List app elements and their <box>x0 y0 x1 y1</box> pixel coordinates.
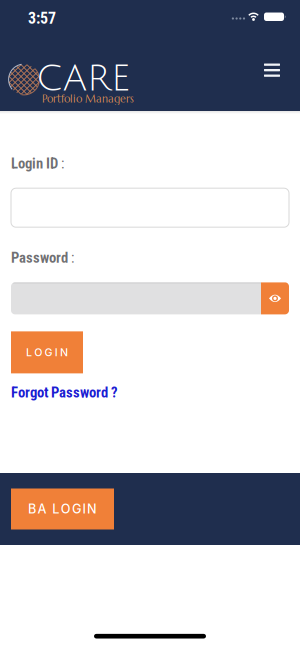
staticText: Login ID <box>11 155 58 172</box>
button[interactable]: L <box>11 331 83 373</box>
staticText: Portfolio Managers <box>42 92 134 105</box>
staticText: 3:57 <box>28 9 56 28</box>
staticText: Forgot Password ? <box>11 384 118 401</box>
staticText: N <box>60 346 68 359</box>
staticText: O <box>61 501 71 517</box>
staticText: G <box>44 346 52 359</box>
staticText: O <box>34 346 42 359</box>
button[interactable]: Forgot Password ? <box>11 384 118 401</box>
staticText: L <box>26 346 32 359</box>
staticText: A <box>37 501 46 517</box>
button[interactable]: Show password <box>261 282 289 314</box>
staticText: N <box>87 501 97 517</box>
staticText: L <box>52 501 59 517</box>
button[interactable]: Menu <box>256 55 288 85</box>
staticText: CARE <box>36 59 130 99</box>
staticText: : <box>68 249 74 266</box>
staticText: G <box>72 501 81 517</box>
staticText: Password <box>11 249 68 266</box>
staticText: : <box>58 155 64 172</box>
button[interactable]: B <box>11 488 114 529</box>
staticText: I <box>82 501 85 517</box>
staticText: I <box>55 346 58 359</box>
staticText: B <box>28 501 36 517</box>
